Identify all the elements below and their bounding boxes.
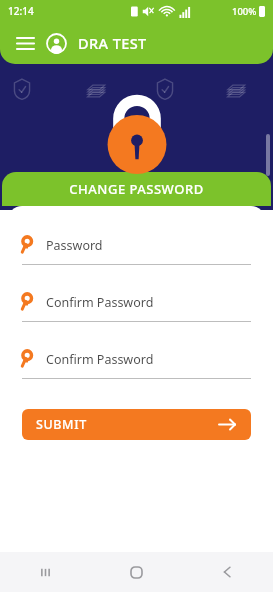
staticText: Confirm Password xyxy=(46,294,154,311)
button[interactable]: Password xyxy=(22,234,251,265)
button[interactable]: Open navigation menu xyxy=(12,30,38,56)
staticText: Password xyxy=(46,237,103,254)
button[interactable]: Confirm Password xyxy=(22,348,251,379)
button[interactable]: Back xyxy=(182,552,273,592)
staticText: CHANGE PASSWORD xyxy=(69,180,204,198)
staticText: 100% xyxy=(232,5,257,18)
button[interactable]: Recent apps xyxy=(0,552,91,592)
staticText: SUBMIT xyxy=(36,416,87,433)
staticText: Confirm Password xyxy=(46,351,154,368)
button[interactable]: Account xyxy=(43,30,69,56)
staticText: DRA TEST xyxy=(78,33,147,53)
button[interactable]: Home xyxy=(91,552,182,592)
button[interactable]: Confirm Password xyxy=(22,291,251,322)
staticText: 12:14 xyxy=(8,4,34,18)
button[interactable]: SUBMIT xyxy=(22,409,251,440)
